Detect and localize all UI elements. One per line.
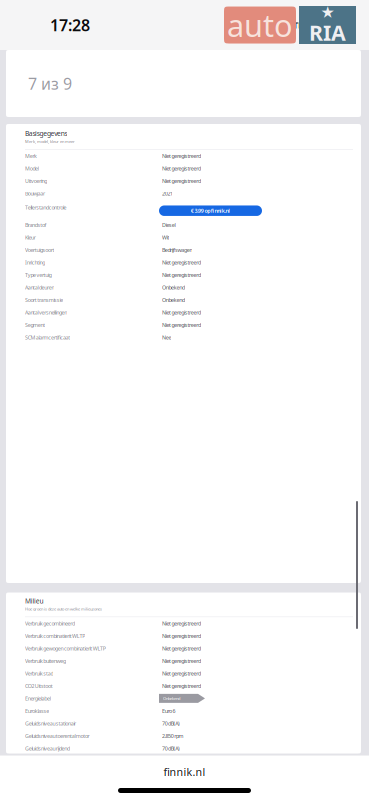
- staticText: RIA: [309, 18, 346, 47]
- staticText: 2021: [162, 190, 173, 197]
- staticText: Energielabel: [25, 695, 51, 702]
- staticText: Aantal deuren: [25, 284, 54, 291]
- staticText: 70 dB(A): [162, 745, 180, 752]
- staticText: Verbruik gecombineerd: [25, 620, 75, 627]
- staticText: Verbruik stad: [25, 670, 53, 677]
- button[interactable]: € 3,99 op finnik.nl: [159, 205, 262, 216]
- staticText: Type vertuig: [25, 271, 52, 278]
- staticText: Diesel: [162, 221, 175, 228]
- staticText: Verbruik buitenweg: [25, 657, 66, 664]
- staticText: Soort transmissie: [25, 296, 63, 303]
- staticText: Niet geregistreerd: [162, 259, 201, 266]
- staticText: 70 dB(A): [162, 720, 180, 727]
- staticText: Kleur: [25, 234, 36, 241]
- staticText: Niet geregistreerd: [162, 645, 201, 652]
- staticText: Inrichting: [25, 259, 45, 266]
- staticText: Merk: [25, 152, 37, 160]
- staticText: Brandstof: [25, 221, 47, 228]
- staticText: Verbruik combinatierit WLTP: [25, 632, 85, 639]
- staticText: Model: [25, 165, 39, 172]
- staticText: Bedrijfswagen: [162, 246, 192, 253]
- staticText: 17:28: [50, 14, 90, 36]
- staticText: Hoe groen is deze auto en welke milieuzo…: [25, 606, 102, 611]
- staticText: Tellerstandcontrole: [25, 204, 67, 211]
- staticText: Onbekend: [162, 284, 185, 291]
- staticText: Niet geregistreerd: [162, 152, 201, 160]
- staticText: Niet geregistreerd: [162, 271, 201, 278]
- staticText: Onbekend: [162, 296, 185, 303]
- staticText: Milieu: [25, 596, 43, 605]
- staticText: Bouwjaar: [25, 190, 45, 197]
- staticText: ★: [320, 3, 334, 21]
- staticText: Geluidsniveau toerental motor: [25, 732, 90, 739]
- staticText: Geluidsniveau stationair: [25, 720, 76, 727]
- staticText: Niet geregistreerd: [162, 321, 201, 328]
- staticText: CO2 Uitstoot: [25, 682, 53, 689]
- staticText: 2.850 rpm: [162, 732, 184, 739]
- staticText: Onbekend: [163, 696, 180, 701]
- staticText: Niet geregistreerd: [162, 165, 201, 172]
- staticText: Euroklasse: [25, 707, 49, 714]
- staticText: LTE: [288, 19, 303, 31]
- staticText: Niet geregistreerd: [162, 632, 201, 639]
- staticText: Merk, model, kleur en meer: [25, 139, 75, 144]
- staticText: Voertuigsoort: [25, 246, 54, 253]
- staticText: Verbruik gewogen combinatierit WLTP: [25, 645, 106, 652]
- staticText: Niet geregistreerd: [162, 657, 201, 664]
- staticText: auto: [227, 5, 293, 45]
- staticText: Basisgegevens: [25, 129, 67, 138]
- staticText: finnik.nl: [163, 765, 205, 779]
- staticText: SCM alarmcertificaat: [25, 334, 70, 341]
- staticText: Nee: [162, 334, 171, 341]
- staticText: € 3,99 op finnik.nl: [191, 207, 230, 214]
- staticText: Niet geregistreerd: [162, 620, 201, 627]
- staticText: 7 из 9: [28, 73, 72, 94]
- staticText: Geluidsniveau rijdend: [25, 745, 70, 752]
- staticText: Uitvoering: [25, 177, 47, 185]
- staticText: Segment: [25, 321, 45, 328]
- staticText: Wit: [162, 234, 169, 241]
- staticText: Niet geregistreerd: [162, 670, 201, 677]
- staticText: Euro 6: [162, 707, 175, 714]
- staticText: Aantal versnellingen: [25, 309, 67, 316]
- staticText: Niet geregistreerd: [162, 682, 201, 689]
- staticText: Niet geregistreerd: [162, 309, 201, 316]
- staticText: Niet geregistreerd: [162, 177, 201, 185]
